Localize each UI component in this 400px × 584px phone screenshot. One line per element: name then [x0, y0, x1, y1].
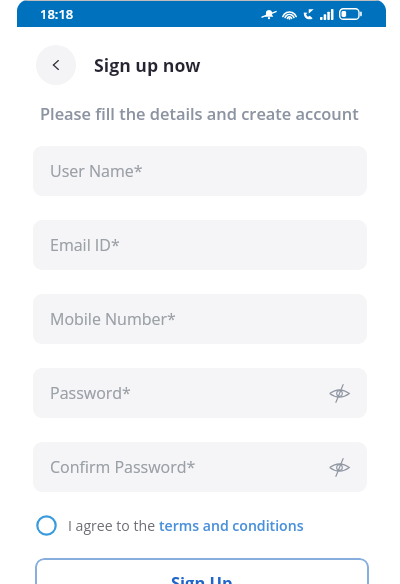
button[interactable]: Back [36, 45, 76, 85]
staticText: Sign up now [94, 53, 201, 77]
button[interactable]: Password* [33, 368, 367, 418]
staticText: Password* [50, 382, 131, 404]
staticText: Please fill the details and create accou… [40, 102, 359, 124]
staticText: User Name* [50, 160, 143, 182]
staticText: Confirm Password* [50, 456, 196, 478]
staticText: I agree to the [68, 516, 159, 535]
staticText: Sign Up [171, 571, 233, 584]
staticText: 18:18 [40, 5, 74, 23]
button[interactable]: User Name* [33, 146, 367, 196]
button[interactable]: Toggle password visibility [327, 381, 351, 405]
staticText: Email ID* [50, 234, 120, 256]
staticText: Mobile Number* [50, 308, 176, 330]
staticText: terms and conditions [159, 516, 304, 535]
button[interactable]: Toggle password visibility [327, 455, 351, 479]
button[interactable]: Sign Up [35, 558, 369, 584]
button[interactable]: I agree to the [36, 513, 304, 538]
button[interactable]: Confirm Password* [33, 442, 367, 492]
button[interactable]: Mobile Number* [33, 294, 367, 344]
button[interactable]: Email ID* [33, 220, 367, 270]
